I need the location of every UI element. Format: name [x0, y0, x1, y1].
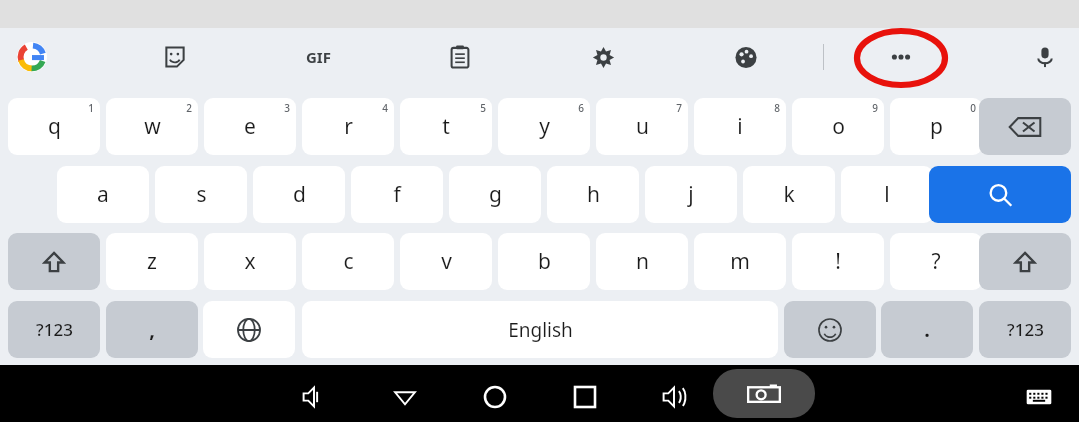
staticText: k	[783, 180, 795, 209]
button[interactable]: Search	[929, 166, 1071, 223]
button[interactable]: e	[204, 98, 296, 155]
staticText: 9	[872, 101, 878, 115]
button[interactable]: Volume down	[288, 371, 340, 422]
button[interactable]: Comma	[106, 301, 198, 358]
staticText: !	[835, 247, 841, 276]
staticText: w	[144, 112, 161, 141]
button[interactable]: h	[547, 166, 639, 223]
button[interactable]: Google	[5, 30, 59, 84]
staticText: u	[636, 112, 649, 141]
button[interactable]: m	[694, 233, 786, 290]
button[interactable]: Screenshot	[713, 369, 815, 418]
staticText: ?123	[36, 318, 73, 341]
staticText: 2	[186, 101, 192, 115]
staticText: y	[539, 112, 550, 141]
button[interactable]: x	[204, 233, 296, 290]
staticText: 6	[578, 101, 584, 115]
button[interactable]: n	[596, 233, 688, 290]
staticText: s	[196, 180, 207, 209]
button[interactable]: Symbols	[8, 301, 100, 358]
staticText: 0	[970, 101, 976, 115]
button[interactable]: w	[106, 98, 198, 155]
button[interactable]: Home	[469, 371, 521, 422]
button[interactable]: k	[743, 166, 835, 223]
staticText: m	[730, 247, 750, 276]
staticText: t	[442, 112, 450, 141]
staticText: x	[244, 247, 256, 276]
button[interactable]: z	[106, 233, 198, 290]
button[interactable]: s	[155, 166, 247, 223]
button[interactable]: Backspace	[979, 98, 1071, 155]
staticText: v	[441, 247, 452, 276]
staticText: j	[688, 180, 694, 209]
button[interactable]: j	[645, 166, 737, 223]
staticText: d	[293, 180, 306, 209]
button[interactable]: o	[792, 98, 884, 155]
staticText: q	[48, 112, 61, 141]
button[interactable]: v	[400, 233, 492, 290]
button[interactable]: i	[694, 98, 786, 155]
button[interactable]: Recents	[559, 371, 611, 422]
button[interactable]: More options	[874, 30, 928, 84]
staticText: ?123	[1007, 318, 1044, 341]
staticText: 8	[774, 101, 780, 115]
staticText: 5	[480, 101, 486, 115]
staticText: GIF	[306, 47, 331, 67]
button[interactable]: Emoji	[784, 301, 876, 358]
button[interactable]: Stickers	[148, 30, 202, 84]
staticText: p	[930, 112, 943, 141]
button[interactable]: Volume up	[648, 371, 700, 422]
staticText: ?	[931, 247, 941, 276]
staticText: English	[508, 317, 573, 343]
button[interactable]: r	[302, 98, 394, 155]
button[interactable]: Shift	[8, 233, 100, 290]
button[interactable]: Themes	[719, 30, 773, 84]
button[interactable]: Clipboard	[433, 30, 487, 84]
staticText: b	[538, 247, 551, 276]
staticText: 7	[676, 101, 682, 115]
button[interactable]: Back	[379, 371, 431, 422]
staticText: a	[97, 180, 109, 209]
staticText: g	[489, 180, 502, 209]
button[interactable]: l	[841, 166, 933, 223]
button[interactable]: d	[253, 166, 345, 223]
button[interactable]: p	[890, 98, 982, 155]
button[interactable]: t	[400, 98, 492, 155]
staticText: o	[832, 112, 845, 141]
staticText: .	[924, 316, 930, 343]
button[interactable]: g	[449, 166, 541, 223]
button[interactable]: f	[351, 166, 443, 223]
button[interactable]: GIF	[291, 30, 345, 84]
button[interactable]: Change language	[203, 301, 295, 358]
staticText: 4	[382, 101, 388, 115]
staticText: 3	[284, 101, 290, 115]
button[interactable]: Period	[881, 301, 973, 358]
button[interactable]: a	[57, 166, 149, 223]
button[interactable]: Shift	[979, 233, 1071, 290]
staticText: l	[884, 180, 890, 209]
button[interactable]: ?	[890, 233, 982, 290]
button[interactable]: b	[498, 233, 590, 290]
staticText: e	[244, 112, 256, 141]
button[interactable]: Symbols	[979, 301, 1071, 358]
staticText: c	[343, 247, 354, 276]
button[interactable]: y	[498, 98, 590, 155]
staticText: i	[737, 112, 743, 141]
staticText: 1	[88, 101, 94, 115]
button[interactable]: Hide keyboard	[1013, 371, 1065, 422]
button[interactable]: Settings	[576, 30, 630, 84]
staticText: r	[344, 112, 353, 141]
button[interactable]: Voice input	[1018, 30, 1072, 84]
staticText: ,	[149, 316, 155, 343]
button[interactable]: c	[302, 233, 394, 290]
staticText: f	[393, 180, 401, 209]
staticText: h	[587, 180, 600, 209]
button[interactable]: English	[302, 301, 778, 358]
button[interactable]: q	[8, 98, 100, 155]
button[interactable]: u	[596, 98, 688, 155]
staticText: n	[636, 247, 649, 276]
staticText: z	[147, 247, 157, 276]
button[interactable]: !	[792, 233, 884, 290]
